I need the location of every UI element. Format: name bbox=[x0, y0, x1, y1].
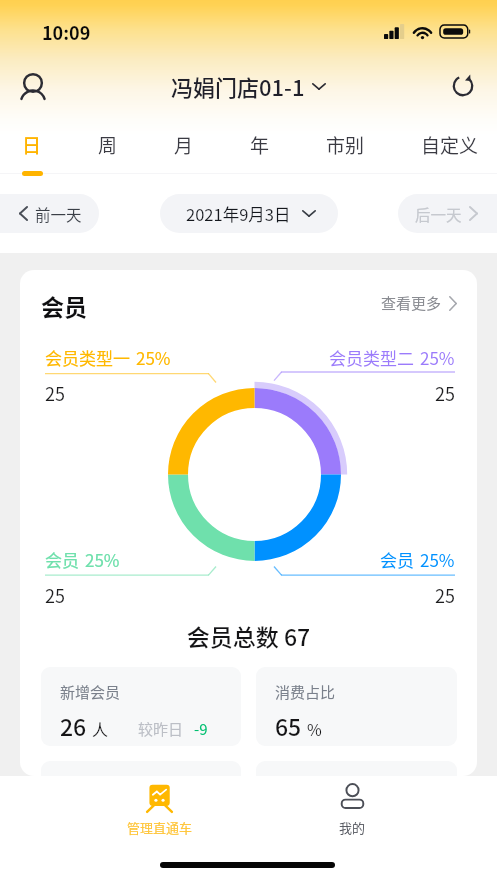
button[interactable]: 冯娟门店01-1 bbox=[167, 66, 330, 106]
staticText: 市别 bbox=[326, 131, 365, 159]
staticText: -9 bbox=[194, 718, 208, 740]
staticText: 自定义 bbox=[421, 131, 479, 159]
staticText: 会员 bbox=[380, 547, 414, 572]
button[interactable]: 新增会员 bbox=[41, 667, 241, 746]
button[interactable]: Account bbox=[10, 66, 56, 112]
staticText: 管理直通车 bbox=[127, 818, 193, 837]
staticText: 25% bbox=[420, 547, 455, 572]
staticText: 25 bbox=[435, 380, 455, 406]
staticText: 人 bbox=[92, 717, 109, 740]
staticText: 25% bbox=[85, 547, 120, 572]
button[interactable]: 2021年9月3日 bbox=[160, 194, 338, 233]
staticText: 25 bbox=[45, 582, 65, 608]
staticText: 月 bbox=[174, 131, 194, 159]
button[interactable]: 消费占比 bbox=[256, 667, 457, 746]
staticText: 25% bbox=[420, 345, 455, 370]
staticText: 25 bbox=[45, 380, 65, 406]
staticText: 前一天 bbox=[35, 203, 82, 225]
button[interactable]: 管理直通车 bbox=[111, 778, 208, 842]
staticText: % bbox=[307, 717, 322, 740]
staticText: 我的 bbox=[339, 818, 366, 837]
staticText: 会员类型二 bbox=[329, 345, 414, 370]
staticText: 日 bbox=[22, 131, 42, 159]
button[interactable]: 周 bbox=[98, 118, 118, 174]
staticText: 消费占比 bbox=[275, 681, 336, 703]
staticText: 会员 bbox=[45, 547, 79, 572]
staticText: 周 bbox=[98, 131, 118, 159]
staticText: 查看更多 bbox=[381, 292, 442, 314]
staticText: 25 bbox=[435, 582, 455, 608]
button[interactable]: 月 bbox=[174, 118, 194, 174]
button[interactable]: Refresh bbox=[440, 63, 486, 109]
staticText: 会员总数 67 bbox=[20, 619, 477, 652]
staticText: 较昨日 bbox=[138, 718, 184, 740]
staticText: 2021年9月3日 bbox=[186, 202, 291, 226]
staticText: 冯娟门店01-1 bbox=[171, 70, 305, 102]
button[interactable]: 年 bbox=[250, 118, 270, 174]
staticText: 10:09 bbox=[42, 19, 91, 45]
staticText: 26 bbox=[60, 709, 87, 742]
button[interactable]: 日 bbox=[22, 118, 42, 174]
staticText: 会员类型一 bbox=[45, 345, 130, 370]
staticText: 后一天 bbox=[415, 203, 462, 225]
staticText: 新增会员 bbox=[60, 681, 121, 703]
button[interactable]: 我的 bbox=[304, 778, 401, 842]
staticText: 年 bbox=[250, 131, 270, 159]
button[interactable]: 前一天 bbox=[0, 194, 99, 233]
staticText: 65 bbox=[275, 709, 302, 742]
button[interactable]: 查看更多 bbox=[381, 288, 457, 322]
staticText: 25% bbox=[136, 345, 171, 370]
staticText: 会员 bbox=[41, 289, 87, 322]
button[interactable]: 后一天 bbox=[398, 194, 497, 233]
button[interactable]: 市别 bbox=[326, 118, 365, 174]
button[interactable]: 自定义 bbox=[421, 118, 479, 174]
